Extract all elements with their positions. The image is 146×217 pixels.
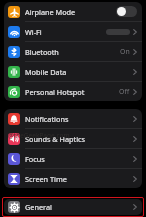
button[interactable]: Sounds & Haptics: [4, 129, 142, 148]
other: Open: [133, 175, 137, 183]
other: Open: [133, 48, 137, 56]
staticText: @theGeekPage.com: [8, 131, 70, 140]
staticText: General: [25, 202, 52, 212]
button[interactable]: Screen Time: [4, 169, 142, 188]
staticText: Notifications: [25, 114, 69, 124]
button[interactable]: Notifications: [4, 109, 142, 128]
staticText: Screen Time: [25, 174, 67, 184]
button[interactable]: Wi-Fi: [4, 22, 142, 41]
other: Open: [133, 28, 137, 36]
button[interactable]: Mobile Data: [4, 62, 142, 81]
button[interactable]: Airplane Mode: [4, 2, 142, 21]
staticText: Bluetooth: [25, 47, 59, 57]
button[interactable]: Airplane Mode toggle: [116, 6, 137, 17]
other: Open: [133, 155, 137, 163]
other: Open: [133, 68, 137, 76]
other: Open: [133, 115, 137, 123]
staticText: Focus: [25, 154, 45, 164]
staticText: On: [120, 47, 130, 56]
staticText: Wi-Fi: [25, 27, 42, 37]
button[interactable]: Focus: [4, 149, 142, 168]
staticText: Mobile Data: [25, 67, 67, 77]
button[interactable]: Personal Hotspot: [4, 82, 142, 101]
staticText: Sounds & Haptics: [25, 134, 86, 144]
staticText: Personal Hotspot: [25, 87, 85, 97]
button[interactable]: General: [4, 199, 142, 215]
staticText: Off: [119, 87, 130, 96]
other: Open: [133, 88, 137, 96]
other: Open: [133, 135, 137, 143]
other: Open: [133, 203, 137, 211]
button[interactable]: Bluetooth: [4, 42, 142, 61]
staticText: Airplane Mode: [25, 7, 76, 17]
